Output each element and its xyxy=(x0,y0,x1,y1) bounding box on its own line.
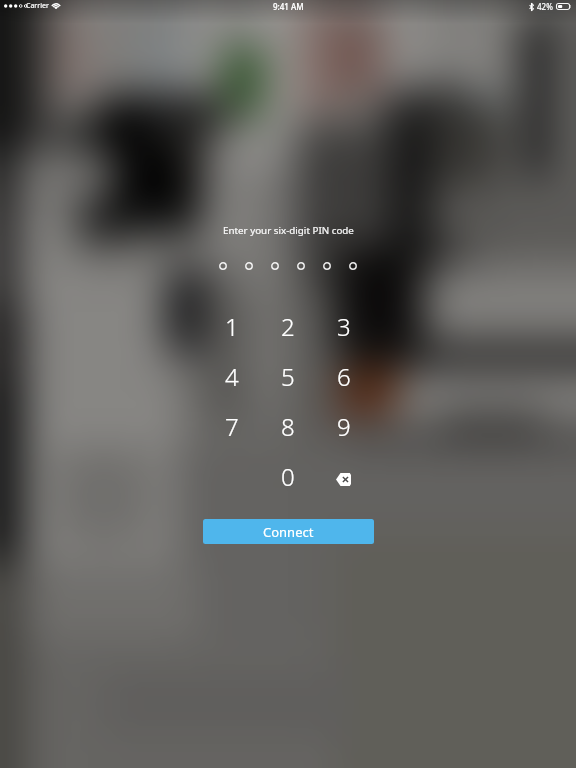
staticText: 42% xyxy=(537,1,553,12)
button[interactable]: 5 xyxy=(260,351,316,401)
button[interactable]: 7 xyxy=(204,401,260,451)
button[interactable]: Delete xyxy=(316,451,372,501)
staticText: 6 xyxy=(337,360,351,393)
staticText: 9:41 AM xyxy=(273,1,304,12)
staticText: 4 xyxy=(225,360,239,393)
button[interactable]: 0 xyxy=(260,451,316,501)
button[interactable]: Connect xyxy=(203,519,374,544)
staticText: 7 xyxy=(225,410,239,443)
staticText: 2 xyxy=(281,310,295,343)
staticText: 8 xyxy=(281,410,295,443)
button[interactable]: 4 xyxy=(204,351,260,401)
staticText: Connect xyxy=(263,523,314,541)
staticText: Enter your six-digit PIN code xyxy=(223,224,354,237)
staticText: 3 xyxy=(337,310,351,343)
staticText: 1 xyxy=(225,310,239,343)
button[interactable]: 8 xyxy=(260,401,316,451)
staticText: 0 xyxy=(281,460,295,493)
button[interactable]: 6 xyxy=(316,351,372,401)
staticText: 9 xyxy=(337,410,351,443)
staticText: Carrier xyxy=(26,1,49,11)
staticText: 5 xyxy=(281,360,295,393)
button[interactable]: 3 xyxy=(316,301,372,351)
button[interactable]: 2 xyxy=(260,301,316,351)
button[interactable]: 1 xyxy=(204,301,260,351)
button[interactable]: 9 xyxy=(316,401,372,451)
